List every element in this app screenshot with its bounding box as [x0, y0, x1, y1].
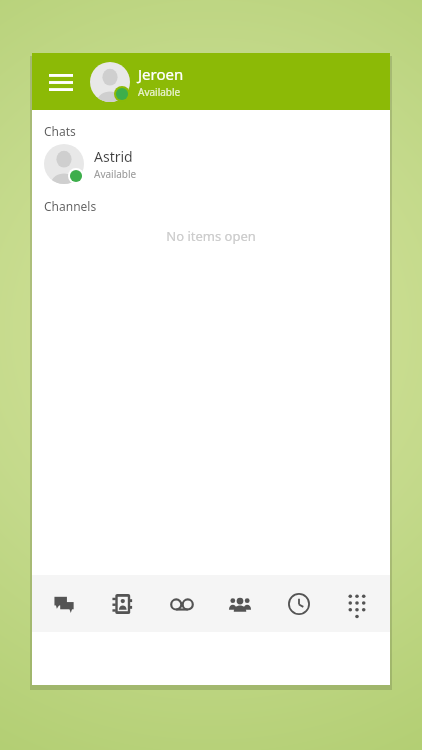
button[interactable]: Groups [214, 575, 266, 632]
button[interactable]: Astrid [32, 139, 390, 189]
button[interactable]: Contacts [97, 575, 149, 632]
staticText: Channels [44, 198, 97, 214]
staticText: Astrid [94, 147, 133, 166]
button[interactable]: Voicemail [156, 575, 208, 632]
staticText: Available [94, 167, 137, 181]
button[interactable]: Recents [273, 575, 325, 632]
staticText: Jeroen [138, 64, 184, 84]
button[interactable]: Open navigation menu [40, 61, 82, 103]
staticText: No items open [166, 227, 256, 245]
button[interactable]: Chats [39, 575, 91, 632]
button[interactable]: Dialpad [331, 575, 383, 632]
staticText: Chats [44, 123, 76, 139]
button[interactable]: Jeroen [90, 53, 184, 110]
staticText: Available [138, 85, 181, 99]
